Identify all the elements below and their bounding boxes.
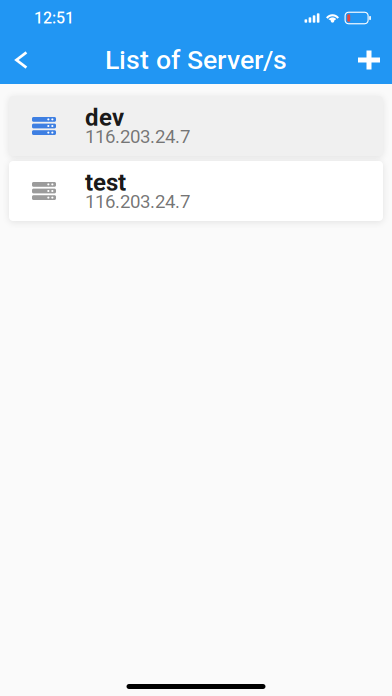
- staticText: List of Server/s: [105, 44, 287, 76]
- button[interactable]: Back: [0, 38, 42, 82]
- button[interactable]: test: [9, 161, 383, 221]
- staticText: 12:51: [34, 9, 74, 27]
- staticText: test: [85, 168, 126, 197]
- button[interactable]: dev: [9, 96, 383, 156]
- staticText: dev: [85, 103, 124, 132]
- button[interactable]: Add server: [344, 37, 392, 82]
- staticText: 116.203.24.7: [85, 126, 190, 147]
- staticText: 116.203.24.7: [85, 191, 190, 212]
